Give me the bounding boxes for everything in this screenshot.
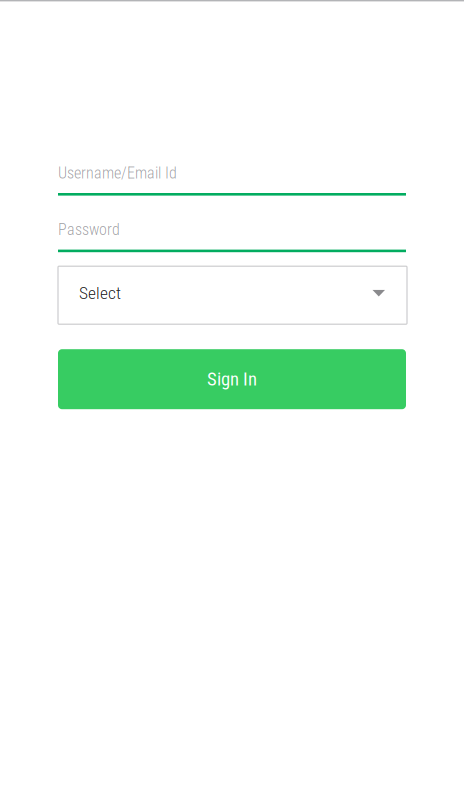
button[interactable]: Password [58, 222, 406, 252]
staticText: Password [58, 220, 120, 239]
button[interactable]: Username/Email Id [58, 165, 406, 196]
button[interactable]: Sign In [58, 349, 406, 409]
staticText: Username/Email Id [58, 164, 177, 182]
button[interactable]: Select [58, 266, 407, 324]
staticText: Select [79, 283, 121, 303]
staticText: Sign In [207, 368, 257, 390]
